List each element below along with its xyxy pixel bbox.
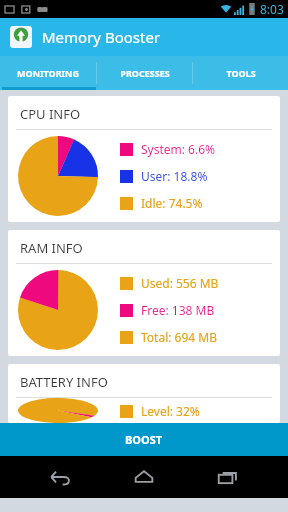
- staticText: Free: 138 MB: [141, 302, 215, 318]
- staticText: Level: 32%: [141, 403, 200, 419]
- button[interactable]: Home: [120, 456, 168, 498]
- staticText: 8:03: [260, 1, 284, 17]
- button[interactable]: Back: [36, 456, 84, 498]
- staticText: MONITORING: [17, 67, 79, 79]
- button[interactable]: MONITORING: [0, 56, 96, 90]
- button[interactable]: BATTERY INFO: [8, 364, 280, 423]
- staticText: CPU INFO: [20, 105, 81, 123]
- staticText: System: 6.6%: [141, 141, 216, 157]
- staticText: Idle: 74.5%: [141, 195, 203, 211]
- staticText: BATTERY INFO: [20, 373, 108, 391]
- button[interactable]: BOOST: [0, 423, 288, 456]
- staticText: PROCESSES: [120, 67, 170, 79]
- button[interactable]: CPU INFO: [8, 96, 280, 222]
- button[interactable]: TOOLS: [193, 56, 288, 90]
- staticText: RAM INFO: [20, 239, 83, 257]
- button[interactable]: PROCESSES: [97, 56, 192, 90]
- staticText: TOOLS: [226, 67, 256, 79]
- staticText: Total: 694 MB: [141, 329, 217, 345]
- button[interactable]: Recent apps: [204, 456, 252, 498]
- staticText: Used: 556 MB: [141, 275, 219, 291]
- staticText: Memory Booster: [42, 27, 161, 47]
- staticText: BOOST: [125, 432, 163, 447]
- staticText: User: 18.8%: [141, 168, 208, 184]
- button[interactable]: RAM INFO: [8, 230, 280, 356]
